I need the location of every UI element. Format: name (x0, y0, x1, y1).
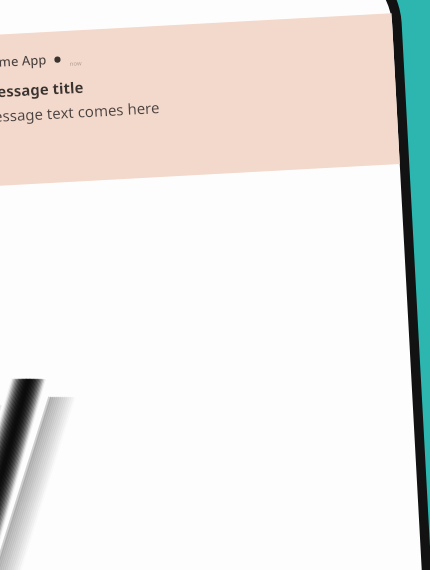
button[interactable]: Notification preview on phone (0, 0, 430, 570)
